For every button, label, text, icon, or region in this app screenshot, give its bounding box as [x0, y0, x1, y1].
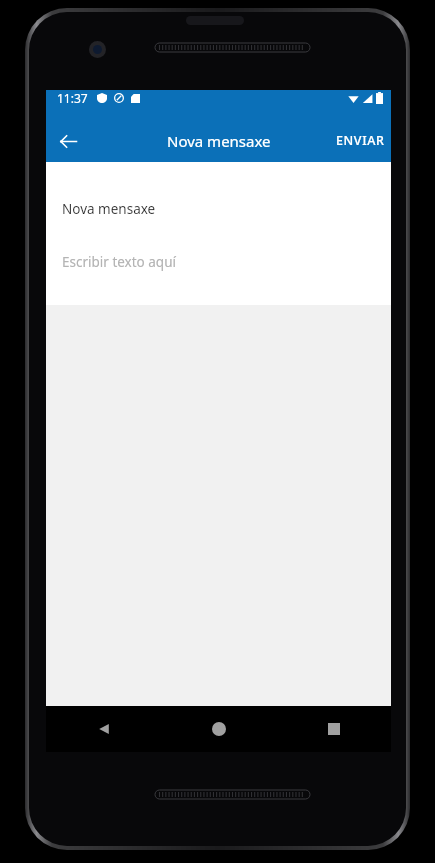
button[interactable]: ENVIAR [330, 119, 391, 162]
staticText: Nova mensaxe [167, 131, 271, 151]
button[interactable]: Escribir texto aquí [46, 245, 391, 279]
button[interactable]: Home [161, 706, 276, 752]
button[interactable]: Nova mensaxe [46, 192, 391, 226]
staticText: Escribir texto aquí [62, 253, 176, 271]
staticText: Nova mensaxe [62, 200, 156, 218]
staticText: ENVIAR [336, 132, 385, 149]
button[interactable]: Recents [276, 706, 391, 752]
button[interactable]: Back [51, 124, 85, 158]
button[interactable]: Back [46, 706, 161, 752]
staticText: 11:37 [57, 90, 88, 106]
